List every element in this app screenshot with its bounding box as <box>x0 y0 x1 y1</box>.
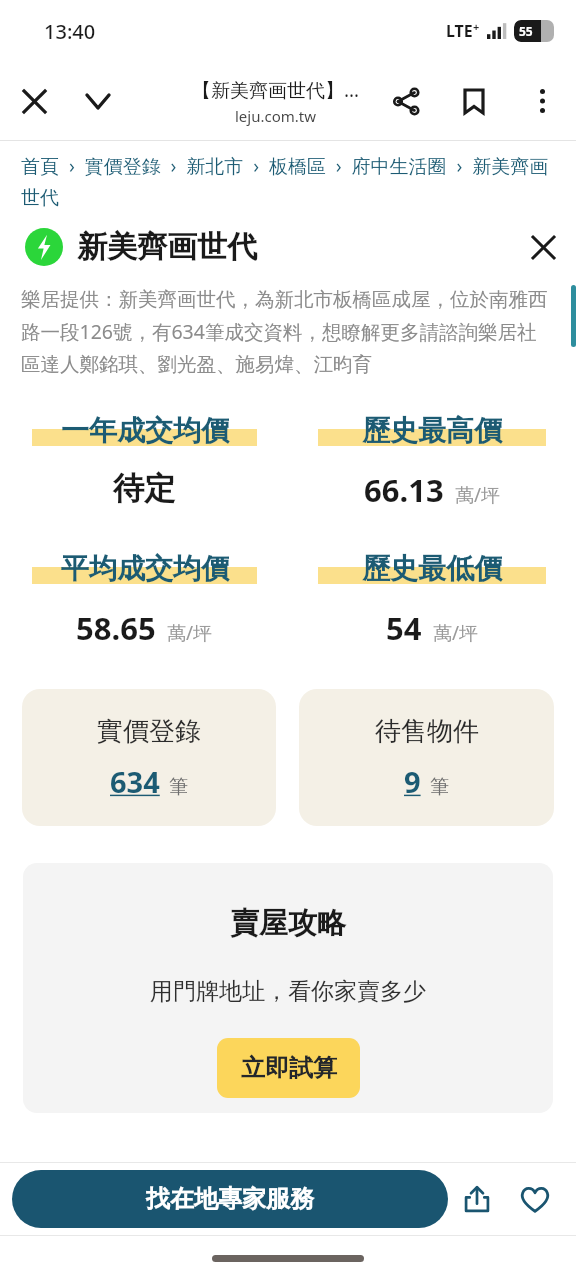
staticText: 66.13 <box>364 469 444 511</box>
button[interactable]: 立即試算 <box>217 1038 360 1098</box>
button[interactable]: 待售物件 <box>299 689 554 826</box>
button[interactable]: 找在地專家服務 <box>12 1170 448 1228</box>
button[interactable]: Share <box>383 78 429 124</box>
staticText: 賣屋攻略 <box>230 905 346 942</box>
staticText: 待售物件 <box>375 715 479 748</box>
staticText: 萬/坪 <box>167 620 213 646</box>
staticText: 筆 <box>430 775 449 799</box>
staticText: 【新美齊画世代】… <box>192 77 360 103</box>
button[interactable]: 實價登錄 <box>22 689 276 826</box>
button[interactable]: Close <box>12 79 56 123</box>
staticText: 歷史最高價 <box>362 413 502 448</box>
staticText: 筆 <box>169 775 188 799</box>
staticText: 新美齊画世代 <box>77 228 257 266</box>
staticText: 歷史最低價 <box>362 551 502 586</box>
staticText: 平均成交均價 <box>61 551 229 586</box>
staticText: leju.com.tw <box>235 106 317 126</box>
staticText: 萬/坪 <box>455 482 501 508</box>
staticText: 樂居提供：新美齊画世代，為新北市板橋區成屋，位於南雅西路一段126號，有634筆… <box>21 287 555 377</box>
button[interactable]: Share <box>448 1170 506 1228</box>
button[interactable]: Expand <box>76 79 120 123</box>
staticText: 待定 <box>113 469 175 508</box>
staticText: 首頁 › 實價登錄 › 新北市 › 板橋區 › 府中生活圈 › 新美齊画世代 <box>21 153 555 210</box>
button[interactable]: Dismiss <box>520 224 566 270</box>
button[interactable]: Bookmark <box>451 78 497 124</box>
staticText: 58.65 <box>76 607 156 649</box>
button[interactable]: More options <box>519 78 565 124</box>
staticText: 實價登錄 <box>97 715 201 748</box>
staticText: 萬/坪 <box>433 620 479 646</box>
staticText: 54 <box>386 607 422 649</box>
button[interactable]: Favorite <box>506 1170 564 1228</box>
staticText: 9 <box>404 762 421 801</box>
staticText: 一年成交均價 <box>61 413 229 448</box>
staticText: 634 <box>110 762 160 801</box>
staticText: LTE <box>446 20 473 42</box>
staticText: 找在地專家服務 <box>146 1184 314 1214</box>
staticText: 13:40 <box>44 18 96 45</box>
staticText: 55 <box>519 23 533 39</box>
staticText: 用門牌地址，看你家賣多少 <box>150 977 426 1006</box>
staticText: 立即試算 <box>241 1053 337 1083</box>
staticText: + <box>473 19 480 34</box>
